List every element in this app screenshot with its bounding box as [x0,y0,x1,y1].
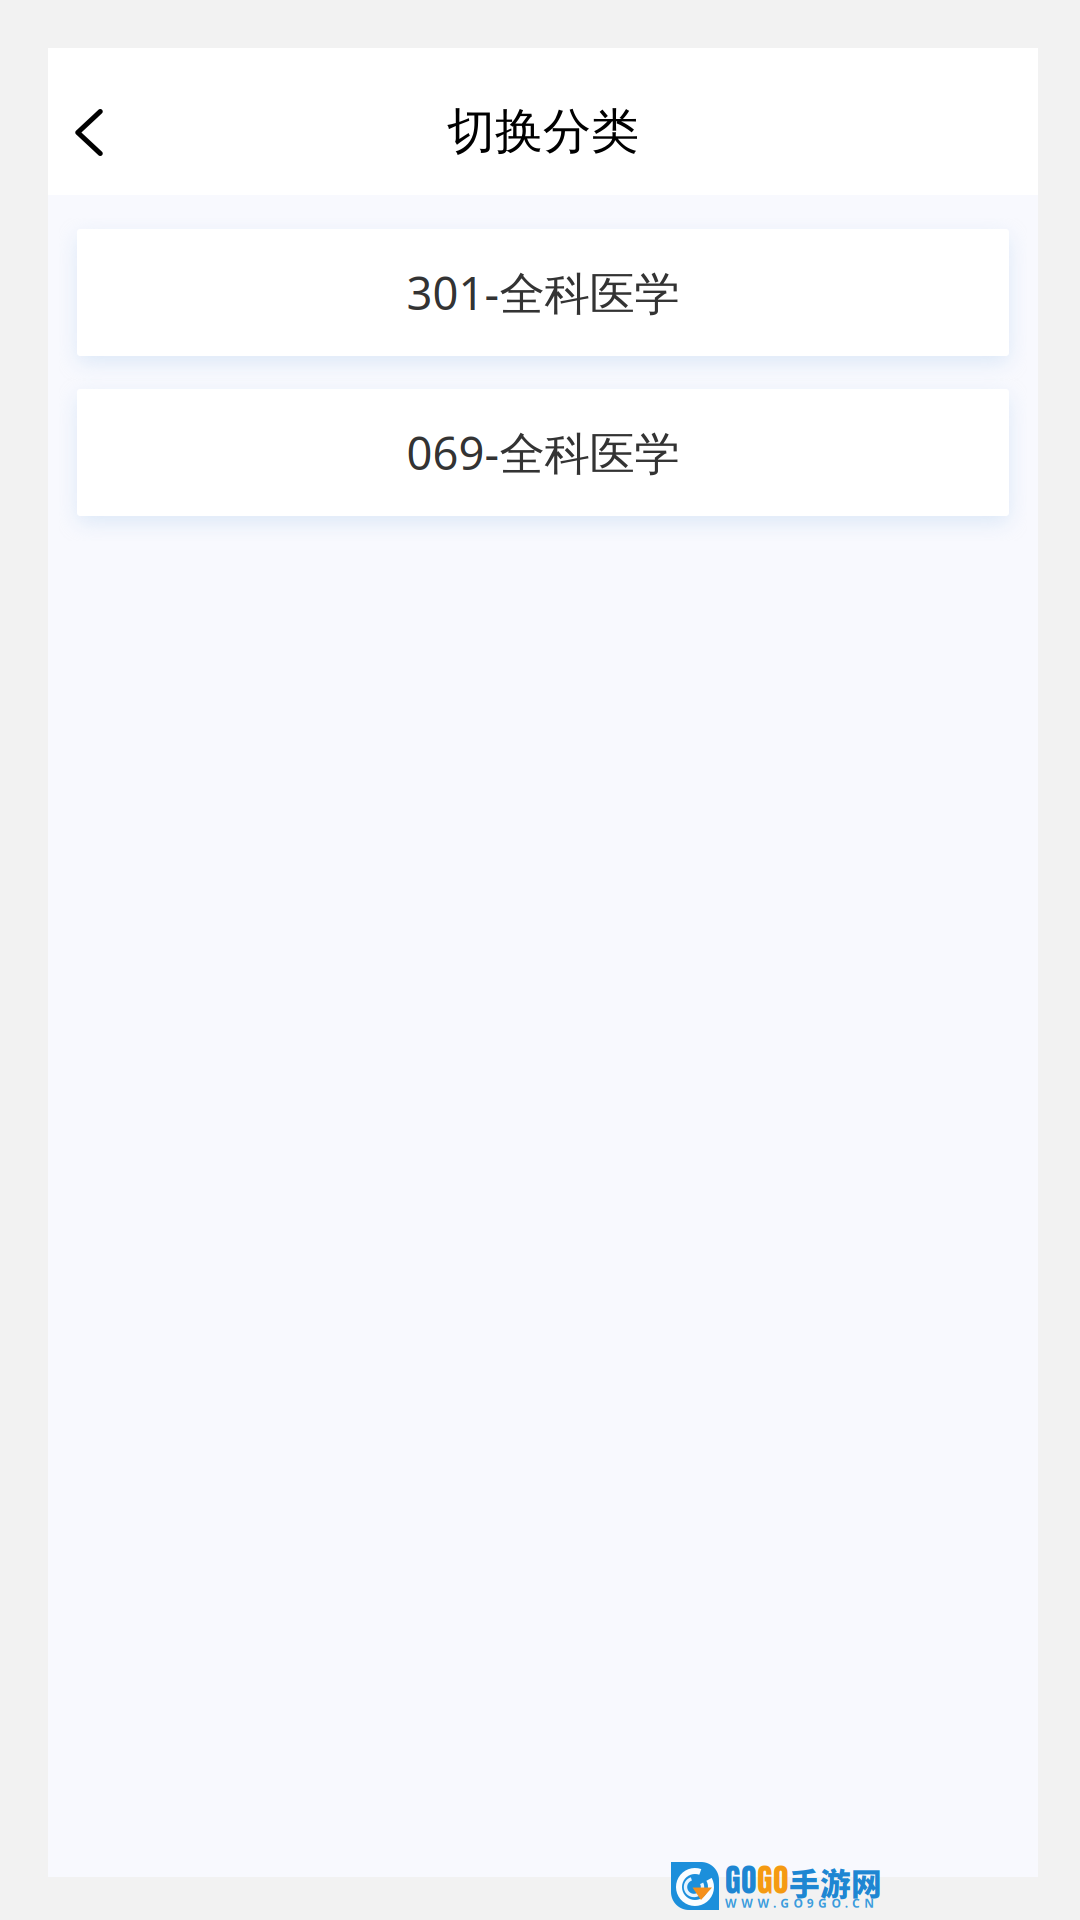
staticText: 切换分类 [447,102,639,161]
button[interactable]: 301-全科医学 [77,229,1009,356]
staticText: GO [757,1856,789,1904]
staticText: 301-全科医学 [406,262,679,323]
staticText: WWW.GO9GO.CN [725,1895,874,1911]
staticText: 069-全科医学 [406,422,679,483]
staticText: 手游网 [789,1860,882,1904]
button[interactable]: Back [48,48,130,195]
staticText: GO [725,1856,757,1904]
button[interactable]: 069-全科医学 [77,389,1009,516]
